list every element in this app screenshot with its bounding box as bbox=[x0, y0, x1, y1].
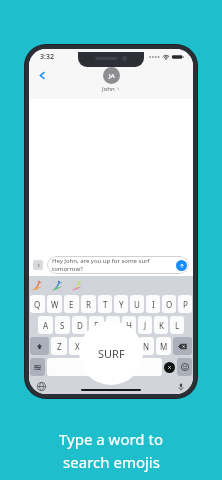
staticText: JA bbox=[109, 72, 115, 80]
staticText: L bbox=[175, 320, 180, 331]
staticText: U bbox=[134, 299, 140, 310]
staticText: M bbox=[160, 341, 168, 352]
staticText: SURF bbox=[98, 346, 125, 361]
button[interactable]: B bbox=[122, 337, 137, 355]
staticText: 3:32 bbox=[40, 52, 54, 62]
button[interactable]: I bbox=[146, 295, 160, 313]
staticText: I bbox=[152, 299, 155, 310]
button[interactable]: X bbox=[69, 337, 85, 355]
staticText: H bbox=[126, 320, 132, 331]
staticText: A bbox=[43, 320, 49, 331]
button[interactable]: Voice input bbox=[174, 380, 187, 393]
button[interactable]: H bbox=[122, 316, 136, 334]
button[interactable]: Hey John, are you up for some surf bbox=[47, 256, 189, 274]
button[interactable]: Clear bbox=[164, 362, 175, 373]
button[interactable]: A bbox=[38, 316, 53, 334]
staticText: Z bbox=[57, 341, 62, 352]
button[interactable]: Back bbox=[33, 66, 51, 84]
button[interactable]: E bbox=[64, 295, 79, 313]
button[interactable]: G bbox=[106, 316, 120, 334]
staticText: O bbox=[166, 299, 173, 310]
staticText: T bbox=[103, 299, 108, 310]
staticText: W bbox=[51, 299, 59, 310]
staticText: P bbox=[183, 299, 188, 310]
button[interactable]: F bbox=[89, 316, 104, 334]
staticText: J bbox=[144, 320, 147, 331]
staticText: Type a word to bbox=[59, 429, 163, 449]
button[interactable]: Q bbox=[30, 295, 45, 313]
button[interactable]: K bbox=[154, 316, 168, 334]
button[interactable]: R bbox=[81, 295, 96, 313]
button[interactable]: J bbox=[138, 316, 152, 334]
button[interactable] bbox=[30, 358, 45, 376]
staticText: Q bbox=[34, 299, 41, 310]
staticText: search emojis bbox=[63, 452, 160, 472]
staticText: F bbox=[94, 320, 99, 331]
staticText: tomorrow? bbox=[52, 265, 83, 273]
staticText: R bbox=[86, 299, 91, 310]
staticText: Hey John, are you up for some surf bbox=[52, 257, 150, 265]
button[interactable]: T bbox=[98, 295, 112, 313]
button[interactable]: D bbox=[72, 316, 87, 334]
staticText: John bbox=[102, 85, 115, 93]
button[interactable]: Expand apps bbox=[33, 260, 43, 270]
button[interactable]: U bbox=[130, 295, 144, 313]
button[interactable]: V bbox=[105, 337, 120, 355]
staticText: S bbox=[60, 320, 65, 331]
button[interactable]: Change keyboard bbox=[35, 380, 48, 393]
button[interactable] bbox=[177, 358, 192, 376]
button[interactable]: L bbox=[170, 316, 184, 334]
button[interactable]: Z bbox=[51, 337, 67, 355]
staticText: D bbox=[77, 320, 83, 331]
staticText: K bbox=[159, 320, 164, 331]
button[interactable]: O bbox=[162, 295, 176, 313]
staticText: Y bbox=[119, 299, 124, 310]
button[interactable]: W bbox=[47, 295, 62, 313]
staticText: V bbox=[110, 341, 115, 352]
staticText: X bbox=[75, 341, 80, 352]
button[interactable] bbox=[173, 337, 192, 355]
button[interactable]: Y bbox=[114, 295, 128, 313]
button[interactable]: P bbox=[178, 295, 192, 313]
button[interactable] bbox=[30, 337, 49, 355]
staticText: N bbox=[143, 341, 150, 352]
button[interactable]: Send bbox=[176, 260, 187, 271]
button[interactable]: M bbox=[156, 337, 171, 355]
staticText: E bbox=[69, 299, 74, 310]
button[interactable]: S bbox=[55, 316, 70, 334]
button[interactable]: N bbox=[139, 337, 154, 355]
button[interactable]: JA bbox=[103, 67, 120, 84]
button[interactable]: C bbox=[87, 337, 103, 355]
